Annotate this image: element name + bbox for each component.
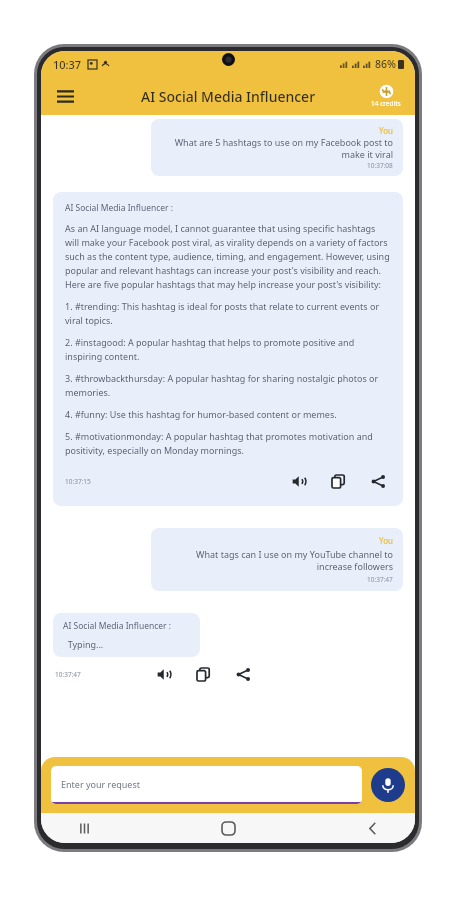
staticText: 10:37:08 [367, 161, 393, 170]
staticText: 1. #trending: This hashtag is ideal for … [65, 300, 391, 326]
button[interactable]: You [151, 119, 403, 176]
button[interactable]: AI Social Media Influencer : [53, 192, 403, 506]
button[interactable]: Recent apps [67, 813, 101, 843]
staticText: 5. #motivationmonday: A popular hashtag … [65, 430, 391, 456]
staticText: AI Social Media Influencer : [63, 620, 172, 632]
staticText: As an AI language model, I cannot guaran… [65, 222, 391, 290]
button[interactable]: Share [365, 468, 391, 494]
button[interactable]: Home [211, 813, 245, 843]
button[interactable]: Voice input [371, 768, 405, 802]
button[interactable]: Read aloud [150, 661, 176, 687]
button[interactable]: Copy [190, 661, 216, 687]
button[interactable]: You [151, 528, 403, 591]
staticText: 2. #instagood: A popular hashtag that he… [65, 336, 391, 362]
button[interactable]: Share [230, 661, 256, 687]
staticText: 3. #throwbackthursday: A popular hashtag… [65, 372, 391, 398]
button[interactable]: Read aloud [285, 468, 311, 494]
button[interactable]: Copy [325, 468, 351, 494]
staticText: What are 5 hashtags to use on my Faceboo… [161, 136, 393, 161]
button[interactable]: 14 credits [363, 84, 409, 108]
staticText: AI Social Media Influencer : [65, 202, 174, 214]
button[interactable]: Enter your request [51, 766, 362, 804]
staticText: 10:37:47 [367, 575, 393, 584]
staticText: 10:37 [53, 57, 82, 72]
staticText: Typing... [63, 638, 104, 650]
staticText: AI Social Media Influencer [141, 87, 316, 106]
button[interactable]: Back [355, 813, 389, 843]
staticText: 10:37:47 [55, 670, 81, 679]
staticText: 86% [375, 57, 396, 71]
button[interactable]: Open navigation menu [49, 80, 81, 112]
staticText: What tags can I use on my YouTube channe… [161, 548, 393, 573]
staticText: You [379, 535, 393, 546]
button[interactable]: AI Social Media Influencer : [53, 613, 200, 657]
staticText: 14 credits [371, 99, 401, 108]
staticText: 4. #funny: Use this hashtag for humor-ba… [65, 408, 337, 420]
staticText: Enter your request [61, 778, 140, 790]
staticText: You [379, 125, 393, 136]
staticText: 10:37:15 [65, 477, 91, 486]
